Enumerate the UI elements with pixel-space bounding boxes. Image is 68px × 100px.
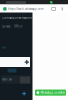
staticText: WhatsApp.com/Ask <box>40 91 64 94</box>
button[interactable]: WhatsApp.com/Ask <box>35 89 66 96</box>
staticText: Conversations <box>13 16 32 19</box>
staticText: Offers <box>14 25 22 28</box>
staticText: main.sw <box>2 78 12 81</box>
staticText: https://web.whatsapp.com <box>8 7 43 11</box>
staticText: Surveys <box>2 25 10 28</box>
staticText: Contacts <box>2 16 13 19</box>
